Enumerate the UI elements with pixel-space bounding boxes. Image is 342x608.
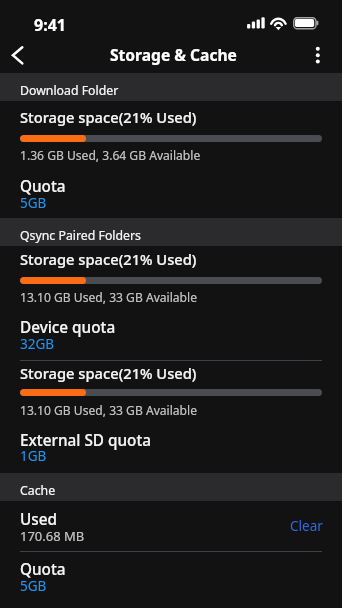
button[interactable] (0, 101, 342, 218)
staticText: External SD quota (20, 430, 151, 451)
staticText: 170.68 MB (20, 527, 85, 545)
staticText: Download Folder (20, 82, 119, 99)
button[interactable]: Qsync Paired Folders (0, 218, 342, 246)
staticText: Used (20, 509, 57, 530)
button[interactable]: Back (0, 36, 34, 73)
staticText: Cache (20, 482, 56, 499)
staticText: Device quota (20, 317, 116, 338)
staticText: 32GB (20, 335, 55, 353)
button[interactable]: Cache (0, 473, 342, 501)
staticText: 5GB (20, 577, 47, 595)
staticText: Quota (20, 559, 66, 580)
staticText: Quota (20, 176, 66, 197)
staticText: 13.10 GB Used, 33 GB Available (20, 289, 197, 305)
staticText: Storage space(21% Used) (20, 107, 197, 127)
staticText: Storage & Cache (110, 44, 237, 65)
button[interactable]: More options (306, 36, 342, 73)
staticText: 5GB (20, 194, 47, 212)
staticText: 1.36 GB Used, 3.64 GB Available (20, 147, 201, 163)
staticText: Storage space(21% Used) (20, 363, 197, 383)
staticText: 13.10 GB Used, 33 GB Available (20, 402, 197, 418)
staticText: Storage space(21% Used) (20, 249, 197, 269)
button[interactable]: Download Folder (0, 73, 342, 101)
staticText: 1GB (20, 447, 47, 465)
button[interactable]: Clear (286, 513, 327, 539)
staticText: Qsync Paired Folders (20, 227, 141, 244)
staticText: Clear (290, 517, 323, 535)
staticText: 9:41 (34, 14, 66, 36)
